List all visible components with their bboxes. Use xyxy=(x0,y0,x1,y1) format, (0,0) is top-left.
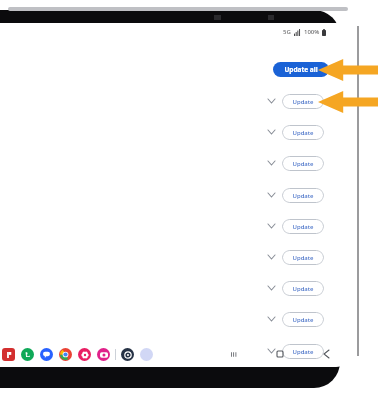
button[interactable]: Messages xyxy=(40,348,53,361)
button[interactable]: Update xyxy=(282,125,324,140)
staticText: Update xyxy=(292,192,314,200)
button[interactable]: Chrome xyxy=(59,348,72,361)
staticText: Update all xyxy=(284,65,318,74)
button[interactable]: Expand details xyxy=(264,219,278,233)
button[interactable]: Update xyxy=(282,250,324,265)
button[interactable]: Update xyxy=(282,156,324,171)
button[interactable]: Expand details xyxy=(264,250,278,264)
button[interactable]: Expand details xyxy=(264,156,278,170)
button[interactable]: Flipboard xyxy=(2,348,15,361)
button[interactable]: Update xyxy=(282,219,324,234)
staticText: Update xyxy=(292,285,314,293)
button[interactable]: Expand details xyxy=(264,281,278,295)
button[interactable]: Update all xyxy=(273,62,329,77)
button[interactable]: Camera xyxy=(97,348,110,361)
button[interactable]: Expand details xyxy=(264,312,278,326)
button[interactable]: Home xyxy=(272,346,288,362)
button[interactable]: Back xyxy=(318,346,334,362)
staticText: 5G xyxy=(283,28,291,36)
staticText: Update xyxy=(292,129,314,137)
staticText: 100% xyxy=(304,28,320,36)
button[interactable]: Update xyxy=(282,94,324,109)
button[interactable]: Update xyxy=(282,312,324,327)
staticText: Update xyxy=(292,348,314,356)
button[interactable]: Update xyxy=(282,344,324,359)
staticText: Update xyxy=(292,254,314,262)
button[interactable]: Recent app xyxy=(140,348,153,361)
button[interactable]: Recents xyxy=(226,346,242,362)
button[interactable]: Expand details xyxy=(264,188,278,202)
button[interactable]: Phone xyxy=(21,348,34,361)
staticText: Update xyxy=(292,160,314,168)
button[interactable]: Settings xyxy=(121,348,134,361)
staticText: Update xyxy=(292,316,314,324)
button[interactable]: Expand details xyxy=(264,125,278,139)
button[interactable]: Update xyxy=(282,188,324,203)
staticText: Update xyxy=(292,223,314,231)
button[interactable]: Gallery xyxy=(78,348,91,361)
button[interactable]: Expand details xyxy=(264,344,278,358)
staticText: Update xyxy=(292,98,314,106)
button[interactable]: Expand details xyxy=(264,94,278,108)
button[interactable]: Update xyxy=(282,281,324,296)
